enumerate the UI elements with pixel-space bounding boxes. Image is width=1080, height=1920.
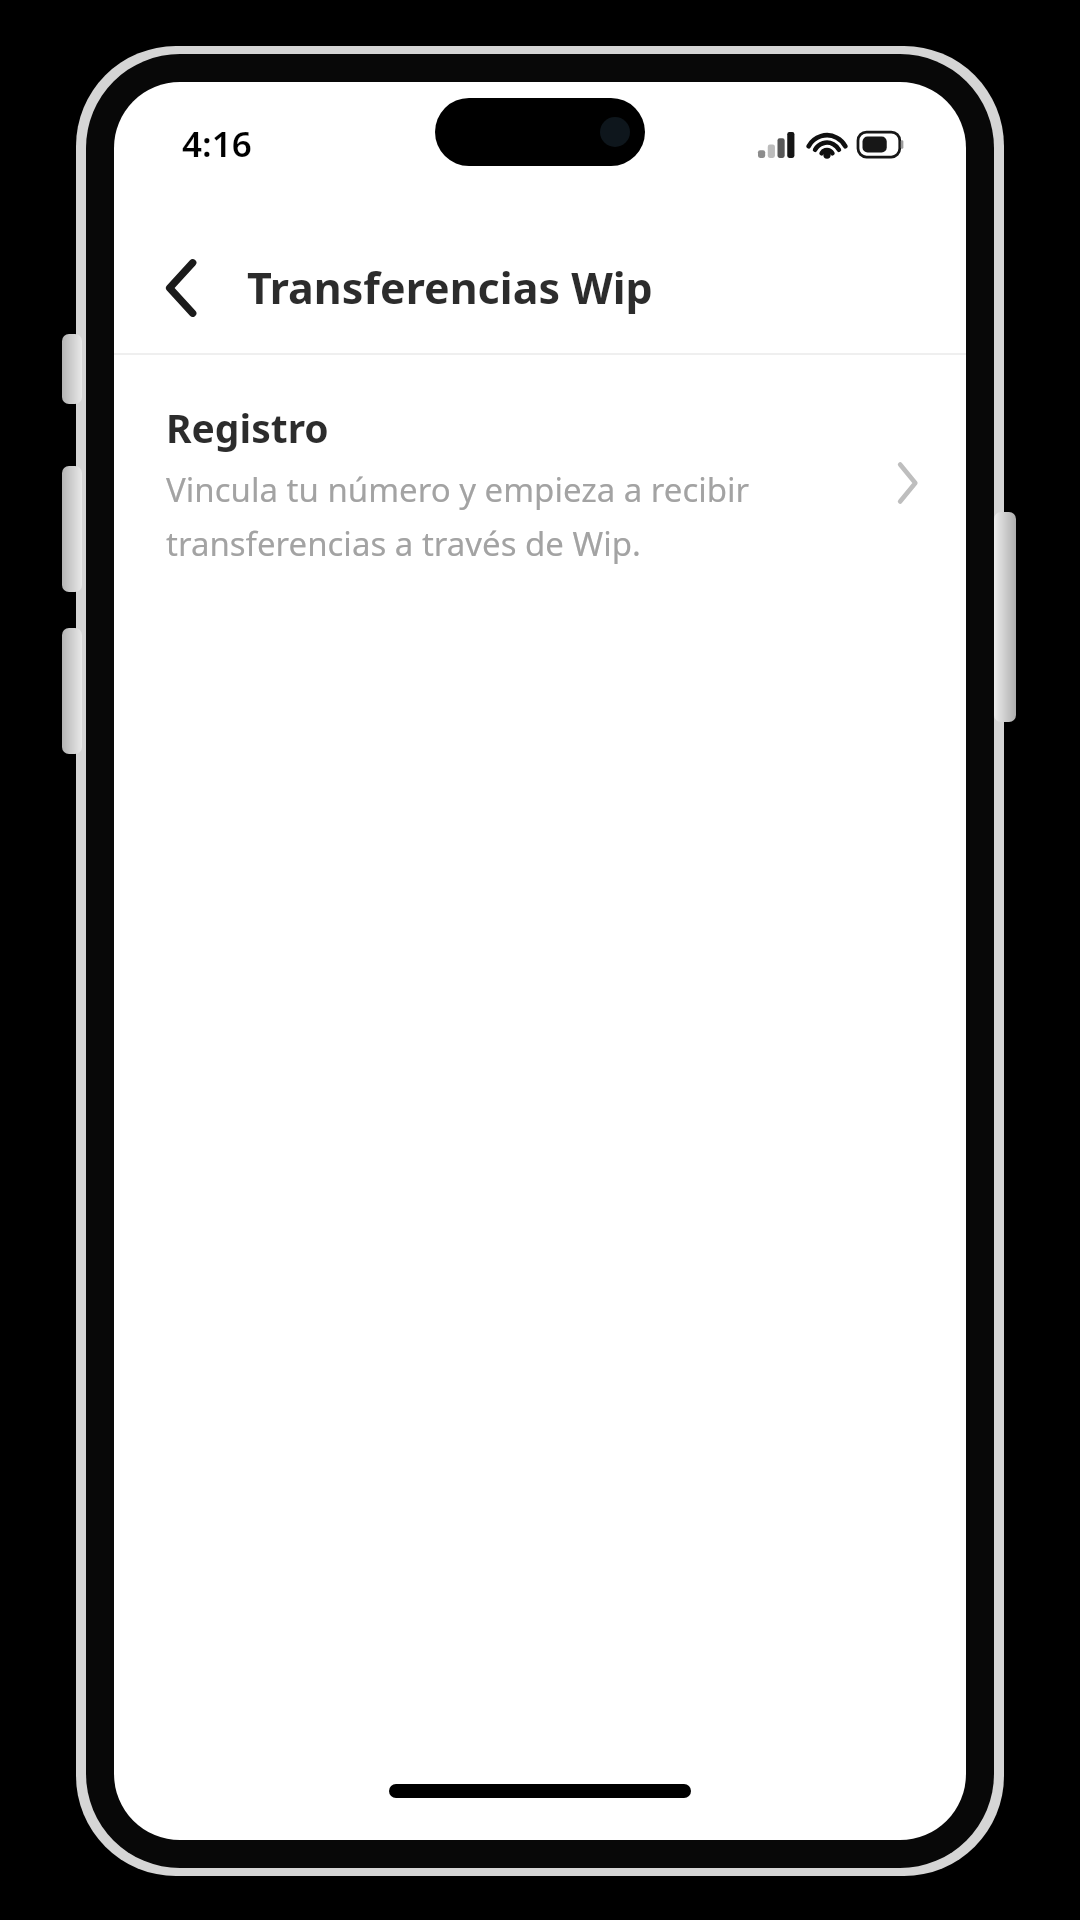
button[interactable]: Back [134, 241, 228, 335]
staticText: Transferencias Wip [247, 258, 653, 317]
staticText: Vincula tu número y empieza a recibir tr… [166, 467, 866, 565]
staticText: 4:16 [182, 120, 252, 168]
other: Abrir Registro [874, 450, 940, 516]
staticText: Registro [166, 401, 329, 454]
button[interactable]: Registro [114, 355, 966, 597]
